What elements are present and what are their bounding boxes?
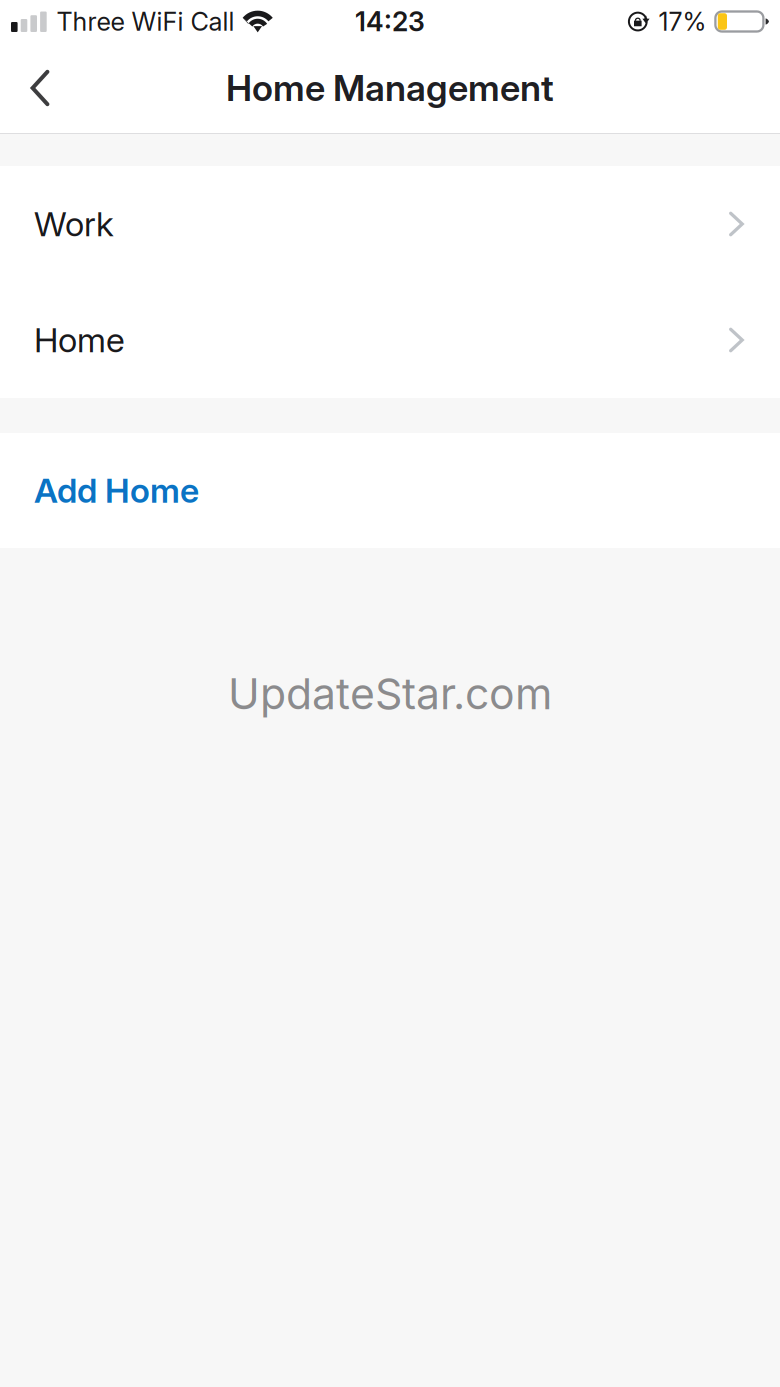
staticText: Add Home xyxy=(34,470,199,511)
button[interactable]: Home xyxy=(0,282,780,398)
staticText: 14:23 xyxy=(355,5,425,38)
button[interactable]: Work xyxy=(0,166,780,282)
staticText: 17% xyxy=(658,6,706,37)
staticText: UpdateStar.com xyxy=(228,668,552,720)
staticText: Home Management xyxy=(226,66,554,110)
staticText: Three WiFi Call xyxy=(56,6,234,37)
staticText: Home xyxy=(34,319,125,360)
button[interactable]: Back xyxy=(9,57,71,119)
button[interactable]: Add Home xyxy=(0,433,780,548)
staticText: Work xyxy=(34,203,114,244)
